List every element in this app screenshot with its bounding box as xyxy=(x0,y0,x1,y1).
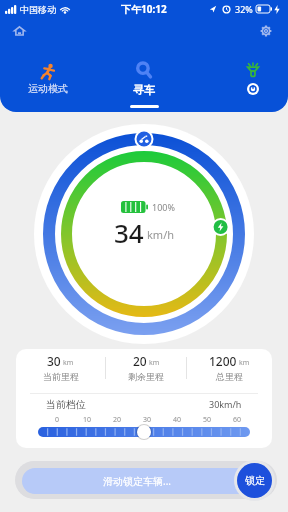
button[interactable]: 1200 xyxy=(187,353,272,382)
staticText: 30 xyxy=(47,353,61,369)
staticText: km/h xyxy=(147,227,175,242)
button[interactable] xyxy=(38,427,250,437)
button[interactable]: 运动模式 xyxy=(20,63,76,95)
staticText: 30km/h xyxy=(209,398,242,410)
staticText: km xyxy=(239,358,250,368)
button[interactable] xyxy=(246,63,260,77)
staticText: 锁定 xyxy=(245,474,265,487)
staticText: 30 xyxy=(143,415,152,425)
staticText: 剩余里程 xyxy=(128,371,164,382)
staticText: 34 xyxy=(114,215,144,250)
staticText: 50 xyxy=(203,415,212,425)
staticText: 滑动锁定车辆... xyxy=(103,474,172,488)
button[interactable] xyxy=(260,25,272,37)
staticText: 20 xyxy=(133,353,147,369)
button[interactable] xyxy=(13,24,26,37)
staticText: 1200 xyxy=(209,353,237,369)
staticText: 当前档位 xyxy=(46,398,86,411)
button[interactable]: 30 xyxy=(16,353,105,382)
button[interactable] xyxy=(247,83,259,95)
staticText: 10 xyxy=(83,415,92,425)
staticText: 0 xyxy=(55,415,60,425)
staticText: 下午10:12 xyxy=(121,2,167,16)
button[interactable]: 锁定 xyxy=(237,463,272,498)
staticText: 20 xyxy=(113,415,122,425)
staticText: 当前里程 xyxy=(43,371,79,382)
staticText: 60 xyxy=(233,415,242,425)
staticText: 总里程 xyxy=(216,371,243,382)
staticText: 100% xyxy=(152,201,175,213)
staticText: 中国移动 xyxy=(20,4,56,15)
staticText: 寻车 xyxy=(133,83,155,97)
button[interactable]: 20 xyxy=(106,353,186,382)
button[interactable]: 寻车 xyxy=(116,61,172,108)
staticText: 40 xyxy=(173,415,182,425)
staticText: km xyxy=(63,358,74,368)
staticText: km xyxy=(149,358,160,368)
staticText: 运动模式 xyxy=(28,82,68,95)
button[interactable]: 滑动锁定车辆... xyxy=(22,468,252,494)
staticText: 32% xyxy=(235,3,253,15)
